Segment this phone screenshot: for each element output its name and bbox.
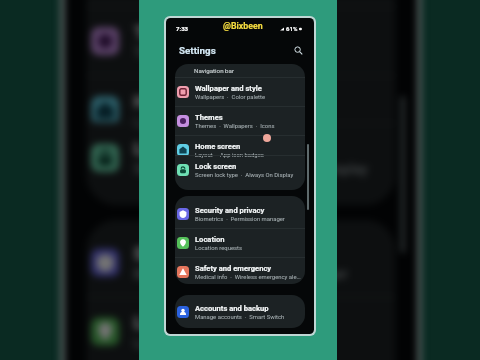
staticText: Layout · App icon badges [134, 115, 298, 132]
button[interactable]: Safety and emergency [175, 257, 305, 284]
staticText: Themes [134, 22, 200, 44]
staticText: Medical info · Wireless emergency alerts [195, 274, 301, 281]
button[interactable]: Security and privacy [175, 199, 305, 228]
staticText: Home screen [195, 142, 241, 151]
button[interactable]: Themes [86, 5, 396, 74]
staticText: Home screen [134, 91, 243, 113]
staticText: Location requests [134, 336, 248, 353]
staticText: Location requests [195, 245, 243, 252]
staticText: Wallpapers · Color palette [195, 94, 266, 101]
staticText: Security and privacy [134, 243, 300, 265]
button[interactable]: Home screen [86, 74, 396, 143]
button[interactable]: Accounts and backup [175, 297, 305, 326]
staticText: Biometrics · Permission manager [134, 267, 348, 284]
staticText: Location [195, 235, 225, 244]
staticText: Security and privacy [195, 206, 265, 215]
staticText: @Bixbeen [223, 21, 263, 31]
staticText: 61% [286, 25, 298, 32]
button[interactable]: Security and privacy [86, 227, 396, 296]
staticText: Lock screen [195, 162, 237, 171]
button[interactable]: Home screen [175, 135, 305, 164]
button[interactable]: Location [175, 228, 305, 257]
staticText: 7:33 [176, 25, 189, 32]
button[interactable]: Location [86, 296, 396, 360]
button[interactable]: Wallpaper and style [175, 77, 305, 106]
staticText: Lock screen [134, 139, 234, 160]
staticText: Screen lock type · Always On Display [134, 163, 369, 179]
staticText: Layout · App icon badges [195, 152, 264, 159]
button[interactable]: Lock screen [175, 155, 305, 184]
staticText: Accounts and backup [195, 304, 269, 313]
staticText: Themes · Wallpapers · Icons [195, 123, 275, 130]
button[interactable]: Lock screen [86, 122, 396, 191]
staticText: Safety and emergency [195, 264, 272, 273]
button[interactable]: Themes [175, 106, 305, 135]
staticText: Screen lock type · Always On Display [195, 172, 294, 179]
staticText: Themes · Wallpapers · Icons [134, 46, 324, 63]
staticText: Navigation bar [194, 67, 235, 74]
staticText: Location [134, 312, 205, 334]
button[interactable]: Search [291, 43, 305, 57]
staticText: Biometrics · Permission manager [195, 216, 285, 223]
staticText: Wallpaper and style [195, 84, 262, 93]
staticText: Manage accounts · Smart Switch [195, 314, 285, 321]
button[interactable]: Wallpaper and style [86, 0, 396, 5]
staticText: Settings [179, 45, 216, 56]
staticText: Themes [195, 113, 223, 122]
